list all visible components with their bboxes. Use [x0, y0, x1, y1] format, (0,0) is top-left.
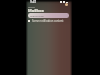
staticText: Search mail: [30, 14, 44, 17]
button[interactable]: Some notification content here: [28, 19, 69, 22]
staticText: Inbox: [28, 5, 35, 8]
button[interactable]: Search mail: [28, 13, 69, 18]
staticText: Mailbox: [28, 8, 44, 13]
staticText: 9:41: [30, 0, 37, 4]
staticText: Some notification content here: [32, 19, 69, 22]
button[interactable]: Account: [65, 3, 68, 6]
